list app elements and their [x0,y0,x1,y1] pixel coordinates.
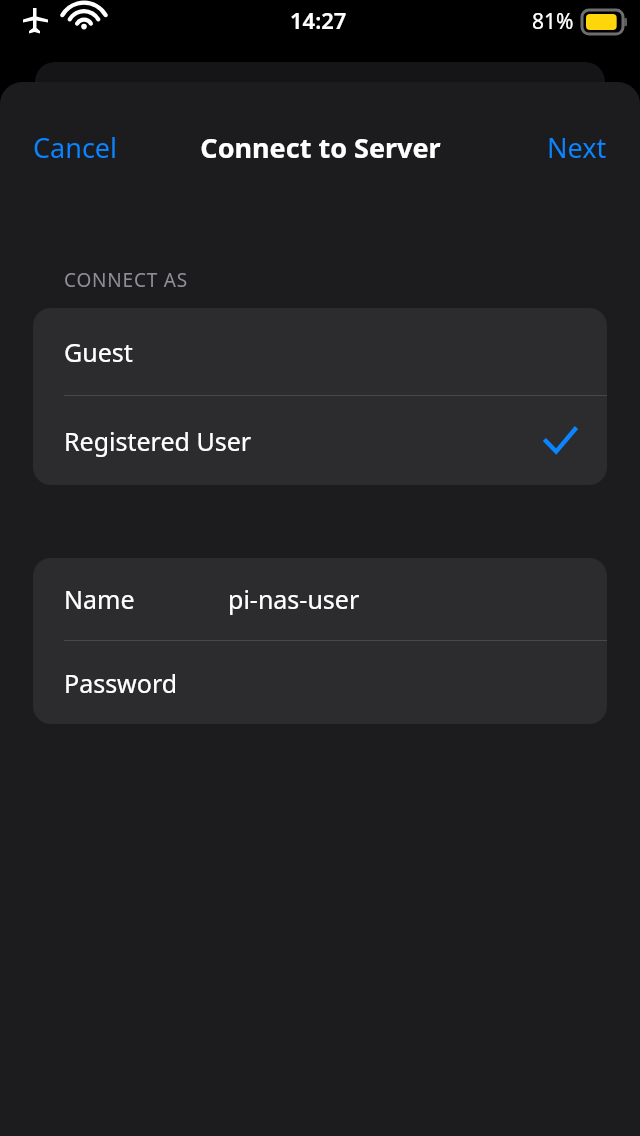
staticText: Registered User [64,424,544,458]
button[interactable]: Next [532,121,622,174]
staticText: Password [64,666,178,700]
staticText: Next [547,129,607,166]
button[interactable]: Guest [33,308,607,395]
staticText: pi-nas-user [228,582,360,616]
staticText: Guest [64,335,133,369]
other: Selected [544,425,576,457]
staticText: CONNECT AS [64,267,188,293]
staticText: 81% [532,7,574,36]
staticText: Cancel [33,129,118,166]
button[interactable]: Password [33,641,607,724]
button[interactable]: Registered User [33,396,607,485]
button[interactable]: Cancel [18,121,133,174]
staticText: Name [64,582,228,616]
staticText: Connect to Server [200,129,441,166]
staticText: 14:27 [290,5,347,35]
button[interactable]: Name [33,558,607,640]
